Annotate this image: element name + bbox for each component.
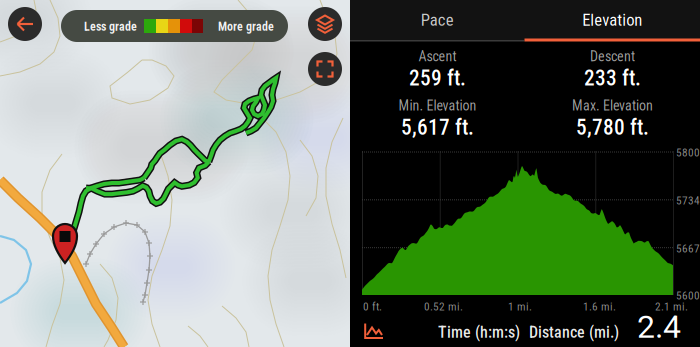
staticText: Pace xyxy=(421,10,454,30)
staticText: 5600 xyxy=(676,289,700,302)
staticText: Ascent xyxy=(418,48,456,65)
staticText: Less grade xyxy=(84,19,137,34)
staticText: More grade xyxy=(218,19,274,34)
staticText: 5734 xyxy=(676,194,700,207)
button[interactable]: Map layers xyxy=(308,7,342,41)
staticText: 5,617 ft. xyxy=(401,115,474,140)
staticText: 0 ft. xyxy=(363,300,382,313)
staticText: Descent xyxy=(590,48,635,65)
staticText: 259 ft. xyxy=(409,66,466,91)
staticText: Elevation xyxy=(582,10,642,30)
button[interactable]: Pace xyxy=(350,0,524,40)
button[interactable]: Back xyxy=(8,7,42,41)
staticText: Time (h:m:s) xyxy=(438,323,520,342)
staticText: 1 mi. xyxy=(508,300,532,313)
staticText: 5,780 ft. xyxy=(576,115,649,140)
staticText: 2.1 mi. xyxy=(655,300,688,313)
staticText: 2.4 xyxy=(637,308,681,345)
staticText: 1.6 mi. xyxy=(583,300,616,313)
staticText: Min. Elevation xyxy=(398,98,476,114)
staticText: 233 ft. xyxy=(584,66,641,91)
staticText: 0.52 mi. xyxy=(424,300,463,313)
button[interactable]: Chart type xyxy=(364,323,384,339)
button[interactable]: Full screen map xyxy=(308,52,342,86)
staticText: 5800 xyxy=(676,146,700,159)
button[interactable]: Elevation xyxy=(524,0,700,40)
staticText: 5667 xyxy=(676,242,700,255)
staticText: Distance (mi.) xyxy=(529,323,619,342)
button[interactable]: Less grade xyxy=(61,10,288,42)
staticText: Max. Elevation xyxy=(572,98,653,114)
